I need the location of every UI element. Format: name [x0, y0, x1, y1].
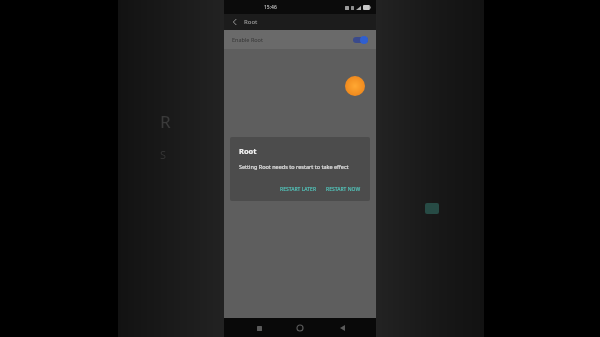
- button[interactable]: RESTART NOW: [324, 184, 363, 195]
- staticText: 15:46: [264, 4, 277, 11]
- button[interactable]: Enable Root: [224, 30, 376, 49]
- staticText: RESTART LATER: [280, 186, 317, 193]
- staticText: RESTART NOW: [326, 186, 361, 193]
- button[interactable]: Recents: [252, 321, 266, 335]
- staticText: Setting Root needs to restart to take ef…: [239, 163, 349, 170]
- staticText: Root: [244, 18, 258, 26]
- staticText: S: [160, 147, 167, 162]
- staticText: Enable Root: [232, 36, 353, 43]
- staticText: R: [160, 110, 171, 133]
- button[interactable]: Home: [293, 321, 307, 335]
- button[interactable]: Enable Root toggle: [353, 35, 368, 44]
- button[interactable]: Back: [335, 321, 349, 335]
- button[interactable]: RESTART LATER: [278, 184, 319, 195]
- button[interactable]: Add: [345, 76, 365, 96]
- button[interactable]: Back: [229, 16, 241, 28]
- staticText: Root: [239, 146, 257, 156]
